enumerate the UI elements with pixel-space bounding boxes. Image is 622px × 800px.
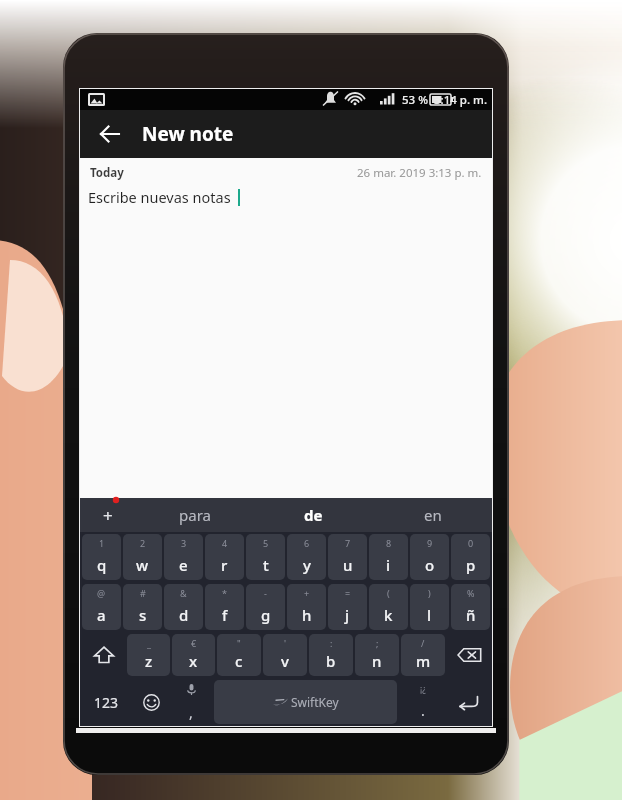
staticText: de — [304, 505, 323, 525]
button[interactable]: 5 — [246, 534, 285, 580]
staticText: r — [221, 555, 228, 575]
staticText: € — [191, 637, 197, 649]
button[interactable]: # — [123, 584, 162, 630]
staticText: f — [222, 605, 228, 625]
button[interactable]: ) — [410, 584, 449, 630]
staticText: Escribe nuevas notas — [88, 187, 231, 207]
button[interactable]: : — [309, 634, 353, 676]
staticText: para — [179, 505, 211, 525]
staticText: i — [386, 555, 391, 575]
staticText: 5 — [263, 537, 269, 549]
staticText: Today — [90, 165, 124, 181]
button[interactable]: Shift — [81, 634, 126, 676]
staticText: z — [145, 651, 153, 671]
button[interactable]: ' — [263, 634, 307, 676]
staticText: ' — [284, 637, 287, 649]
button[interactable]: € — [172, 634, 215, 676]
button[interactable]: ( — [369, 584, 408, 630]
button[interactable]: Backspace — [446, 634, 491, 676]
staticText: t — [263, 555, 269, 575]
staticText: b — [326, 651, 336, 671]
button[interactable]: 8 — [369, 534, 408, 580]
button[interactable]: ; — [355, 634, 399, 676]
button[interactable]: Voice input — [171, 680, 211, 724]
staticText: / — [421, 637, 425, 649]
staticText: * — [222, 587, 227, 599]
staticText: v — [281, 651, 289, 671]
button[interactable]: Back — [90, 114, 130, 154]
button[interactable]: Enter — [445, 680, 491, 724]
staticText: # — [140, 587, 146, 599]
staticText: 26 mar. 2019 3:13 p. m. — [357, 165, 482, 181]
button[interactable]: 1 — [82, 534, 121, 580]
staticText: 53 % — [402, 92, 428, 108]
button[interactable]: para — [136, 498, 254, 532]
staticText: a — [97, 605, 106, 625]
staticText: l — [427, 605, 432, 625]
button[interactable]: 6 — [287, 534, 326, 580]
staticText: 123 — [94, 693, 119, 712]
staticText: . — [421, 701, 425, 720]
staticText: @ — [97, 587, 106, 599]
button[interactable]: & — [164, 584, 203, 630]
button[interactable]: _ — [127, 634, 170, 676]
button[interactable]: + — [287, 584, 326, 630]
button[interactable]: en — [373, 498, 492, 532]
staticText: c — [235, 651, 243, 671]
staticText: o — [425, 555, 435, 575]
staticText: + — [103, 504, 113, 527]
button[interactable]: 3 — [164, 534, 203, 580]
staticText: ; — [376, 637, 379, 649]
staticText: 2 — [140, 537, 146, 549]
staticText: 6 — [304, 537, 310, 549]
staticText: x — [189, 651, 198, 671]
button[interactable]: 0 — [451, 534, 490, 580]
staticText: q — [97, 555, 107, 575]
button[interactable]: Space — [214, 680, 397, 724]
button[interactable]: ¡¿ — [400, 680, 445, 724]
button[interactable]: 7 — [328, 534, 367, 580]
staticText: n — [372, 651, 382, 671]
staticText: y — [303, 555, 311, 575]
staticText: 4 — [222, 537, 228, 549]
staticText: New note — [142, 121, 234, 147]
staticText: : — [330, 637, 333, 649]
staticText: 8 — [386, 537, 392, 549]
staticText: SwiftKey — [291, 694, 339, 710]
button[interactable]: 9 — [410, 534, 449, 580]
button[interactable]: 4 — [205, 534, 244, 580]
staticText: e — [179, 555, 188, 575]
button[interactable]: More options — [80, 498, 136, 532]
staticText: s — [139, 605, 147, 625]
staticText: ¡¿ — [420, 683, 426, 694]
button[interactable]: 2 — [123, 534, 162, 580]
button[interactable]: % — [451, 584, 490, 630]
staticText: - — [264, 587, 267, 599]
button[interactable]: / — [401, 634, 445, 676]
button[interactable]: 123 — [81, 680, 131, 724]
button[interactable]: de — [254, 498, 373, 532]
staticText: ñ — [466, 605, 476, 625]
button[interactable]: - — [246, 584, 285, 630]
button[interactable]: " — [217, 634, 261, 676]
button[interactable]: = — [328, 584, 367, 630]
staticText: " — [237, 637, 241, 649]
staticText: _ — [147, 637, 151, 649]
button[interactable]: * — [205, 584, 244, 630]
staticText: % — [467, 587, 475, 599]
staticText: p — [466, 555, 476, 575]
staticText: g — [261, 605, 271, 625]
staticText: ( — [387, 587, 390, 599]
staticText: m — [416, 651, 431, 671]
button[interactable]: @ — [82, 584, 121, 630]
button[interactable]: Emoji — [131, 680, 171, 724]
staticText: w — [136, 555, 149, 575]
staticText: ) — [428, 587, 431, 599]
staticText: 3:14 p. m. — [434, 92, 488, 108]
button[interactable]: Today — [80, 158, 492, 498]
staticText: 9 — [427, 537, 433, 549]
staticText: & — [180, 587, 187, 599]
staticText: 0 — [468, 537, 474, 549]
staticText: h — [302, 605, 312, 625]
staticText: k — [384, 605, 393, 625]
